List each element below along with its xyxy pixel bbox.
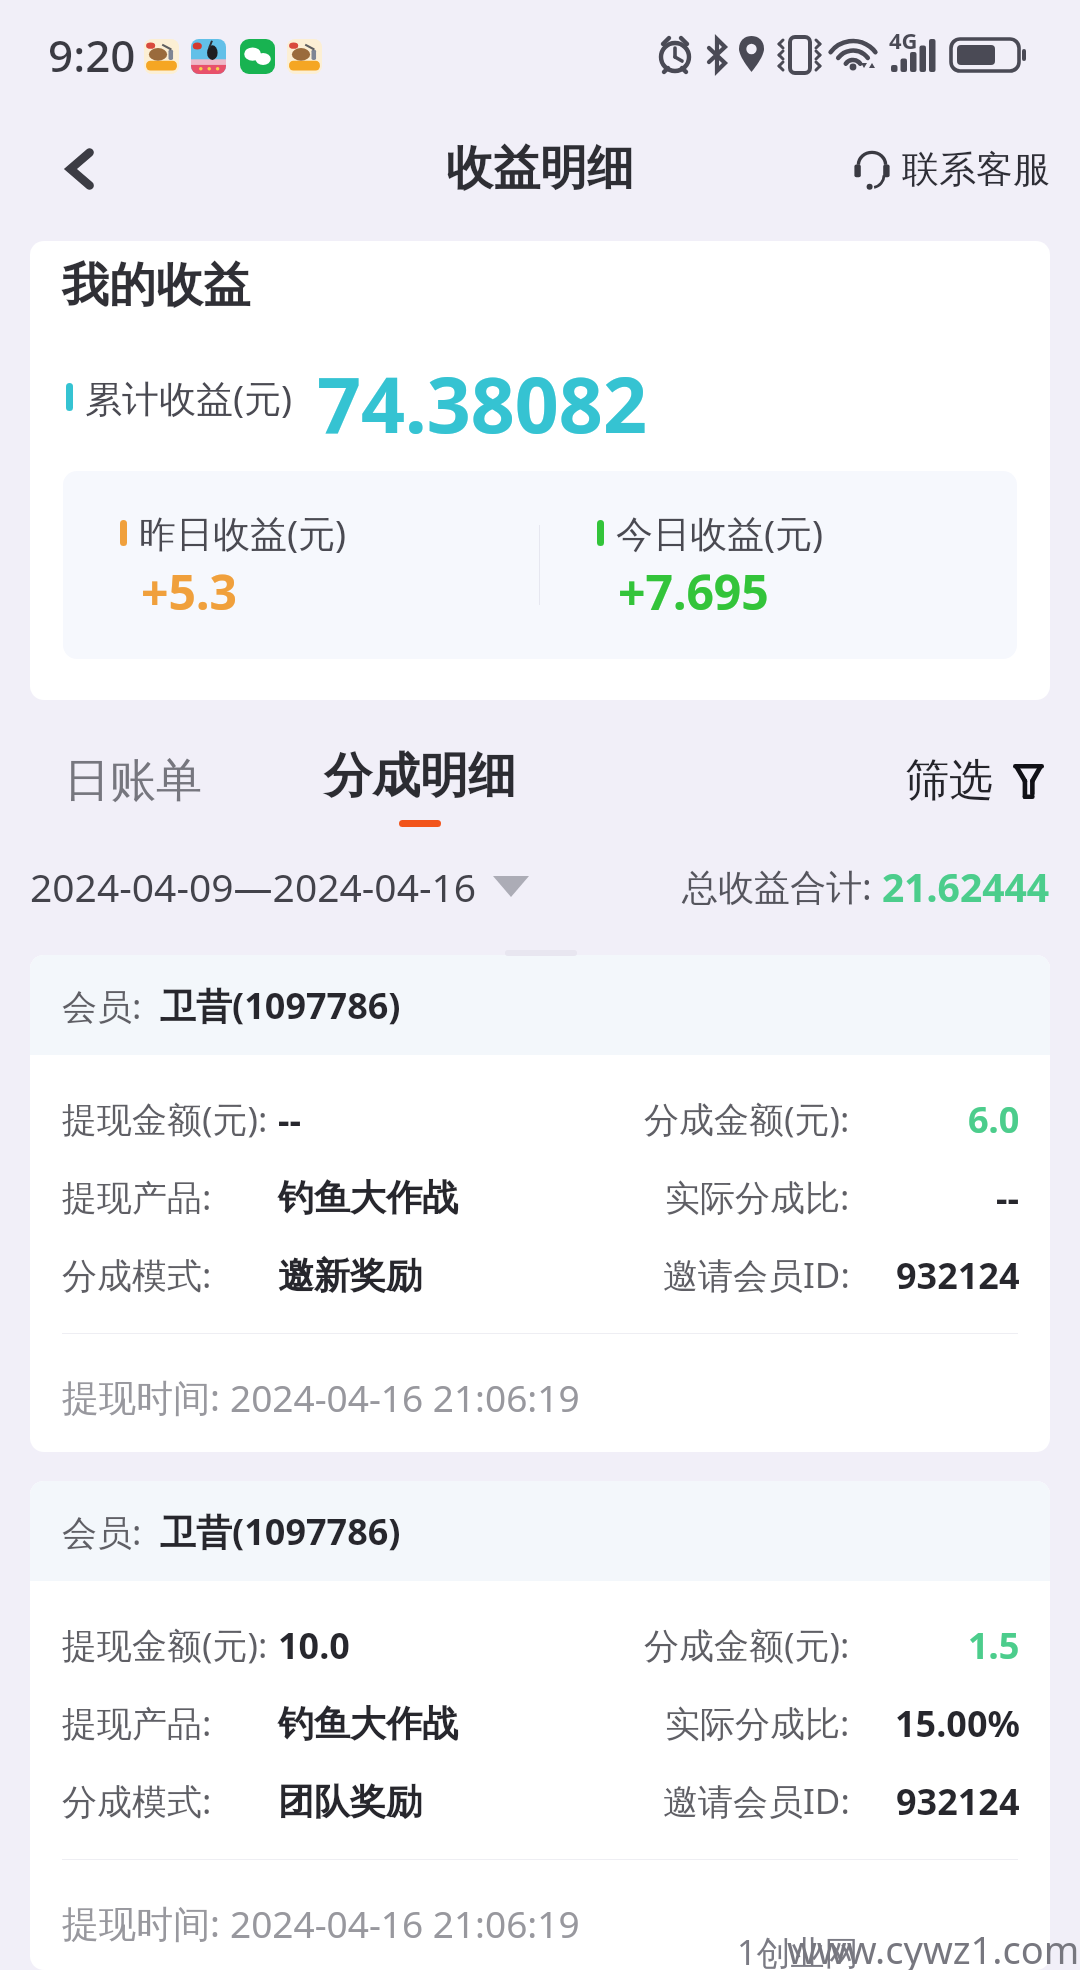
- staticText: 邀新奖励: [278, 1253, 422, 1298]
- staticText: 提现金额(元):: [62, 1621, 268, 1669]
- button[interactable]: 2024-04-09—2024-04-16: [30, 860, 529, 913]
- staticText: 提现产品:: [62, 1173, 212, 1221]
- staticText: 2024-04-16 21:06:19: [230, 1372, 580, 1422]
- button[interactable]: Back: [56, 145, 104, 193]
- staticText: 2024-04-09—2024-04-16: [30, 860, 477, 913]
- staticText: 分成模式:: [62, 1777, 212, 1825]
- staticText: 932124: [896, 1251, 1020, 1300]
- staticText: 联系客服: [902, 146, 1050, 193]
- staticText: 1创业网: [737, 1929, 859, 1970]
- staticText: 4G: [889, 25, 918, 55]
- staticText: 日账单: [64, 752, 202, 810]
- button[interactable]: 筛选: [905, 753, 1044, 808]
- staticText: 会员:: [62, 982, 160, 1030]
- staticText: 会员:: [62, 1508, 160, 1556]
- staticText: 我的收益: [62, 256, 250, 315]
- staticText: 分成金额(元):: [644, 1621, 850, 1669]
- staticText: 卫昔(1097786): [160, 981, 401, 1030]
- staticText: 实际分成比:: [665, 1173, 850, 1221]
- staticText: 15.00%: [895, 1699, 1020, 1748]
- staticText: 今日收益(元): [616, 507, 824, 558]
- staticText: 卫昔(1097786): [160, 1507, 401, 1556]
- staticText: +5.3: [141, 559, 237, 624]
- staticText: www.cywz1.com: [787, 1923, 1080, 1970]
- staticText: 筛选: [905, 753, 993, 808]
- button[interactable]: 联系客服: [852, 146, 1050, 193]
- staticText: 实际分成比:: [665, 1699, 850, 1747]
- button[interactable]: 日账单: [64, 752, 202, 810]
- staticText: 分成金额(元):: [644, 1095, 850, 1143]
- staticText: 邀请会员ID:: [663, 1777, 850, 1825]
- staticText: 昨日收益(元): [139, 507, 347, 558]
- staticText: --: [278, 1095, 302, 1144]
- staticText: 提现时间:: [62, 1897, 230, 1948]
- button[interactable]: 分成明细: [324, 746, 516, 827]
- staticText: 10.0: [278, 1621, 350, 1670]
- staticText: 分成模式:: [62, 1251, 212, 1299]
- staticText: 邀请会员ID:: [663, 1251, 850, 1299]
- staticText: 钓鱼大作战: [278, 1701, 458, 1746]
- staticText: 提现金额(元):: [62, 1095, 268, 1143]
- staticText: 钓鱼大作战: [278, 1175, 458, 1220]
- button[interactable]: 会员:: [30, 955, 1050, 1452]
- staticText: 收益明细: [446, 139, 634, 198]
- staticText: --: [996, 1173, 1020, 1222]
- staticText: 21.62444: [882, 860, 1050, 913]
- staticText: 提现时间:: [62, 1371, 230, 1422]
- staticText: 提现产品:: [62, 1699, 212, 1747]
- staticText: 累计收益(元): [85, 372, 293, 423]
- staticText: 总收益合计:: [682, 862, 882, 911]
- staticText: 6.0: [968, 1095, 1020, 1144]
- staticText: 9:20: [48, 25, 136, 85]
- staticText: 1.5: [968, 1621, 1020, 1670]
- button[interactable]: 会员:: [30, 1481, 1050, 1970]
- staticText: +7.695: [618, 559, 769, 624]
- staticText: 932124: [896, 1777, 1020, 1826]
- staticText: 团队奖励: [278, 1779, 422, 1824]
- staticText: 分成明细: [324, 746, 516, 806]
- staticText: 74.38082: [317, 351, 647, 439]
- staticText: 2024-04-16 21:06:19: [230, 1898, 580, 1948]
